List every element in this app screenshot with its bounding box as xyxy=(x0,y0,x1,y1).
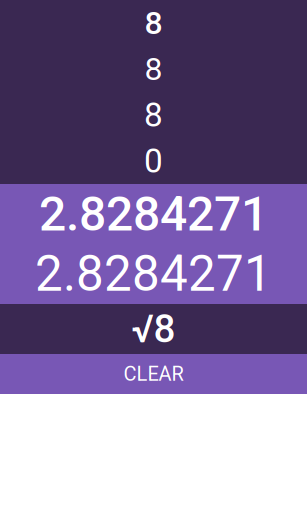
staticText: 8 xyxy=(144,50,162,88)
staticText: 0 xyxy=(144,141,163,181)
staticText: CLEAR xyxy=(123,362,183,386)
staticText: √8 xyxy=(131,306,175,352)
staticText: 2.8284271 xyxy=(39,186,268,242)
staticText: 2.8284271 xyxy=(35,245,272,303)
staticText: 8 xyxy=(144,95,163,135)
staticText: 8 xyxy=(144,4,162,42)
